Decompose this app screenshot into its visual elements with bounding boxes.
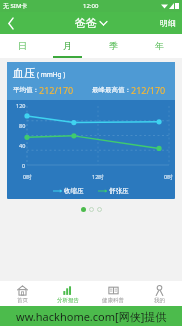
staticText: 无 SIM卡 (3, 2, 28, 10)
staticText: 明细 (160, 18, 176, 28)
staticText: 12时 (92, 173, 104, 181)
button[interactable]: 明细 (154, 12, 182, 34)
button[interactable]: 舒张压 (98, 187, 129, 195)
staticText: 平均值： (13, 86, 39, 94)
button[interactable]: 季 (90, 34, 136, 56)
staticText: ( mmHg ) (37, 70, 66, 79)
button[interactable]: 我的 (136, 281, 182, 306)
button[interactable]: Page (97, 207, 102, 212)
staticText: 212/170 (131, 84, 166, 96)
button[interactable]: Back (0, 12, 22, 34)
staticText: 爸爸 (75, 16, 97, 30)
staticText: 0时 (164, 173, 173, 181)
staticText: 血压 (13, 66, 35, 80)
button[interactable]: 年 (136, 34, 182, 56)
staticText: 120 (16, 102, 26, 109)
staticText: 40 (19, 142, 26, 149)
staticText: 收缩压 (64, 187, 84, 195)
button[interactable]: 分析报告 (45, 281, 90, 306)
staticText: 年 (155, 40, 164, 51)
button[interactable]: 爸爸 (75, 16, 107, 30)
button[interactable]: 首页 (0, 281, 45, 306)
button[interactable]: 日 (0, 34, 45, 56)
staticText: 日 (18, 40, 27, 51)
staticText: 首页 (17, 297, 28, 304)
staticText: 80 (19, 122, 26, 129)
button[interactable]: 健康科普 (90, 281, 136, 306)
button[interactable]: 月 (45, 34, 90, 56)
staticText: 健康科普 (102, 297, 124, 304)
staticText: 最峰最高值： (92, 86, 131, 94)
staticText: 分析报告 (57, 297, 79, 304)
button[interactable]: 收缩压 (53, 187, 84, 195)
staticText: ww.hackhome.com[网侠]提供 (16, 309, 167, 324)
staticText: 0 (22, 162, 26, 169)
staticText: 212/170 (39, 84, 74, 96)
staticText: 12:00 (83, 2, 99, 10)
button[interactable]: 血压 (7, 62, 175, 199)
staticText: 月 (63, 40, 72, 51)
button[interactable]: Page 1 (81, 207, 86, 212)
button[interactable]: Page (89, 207, 94, 212)
staticText: 0时 (23, 173, 32, 181)
staticText: 舒张压 (109, 187, 129, 195)
staticText: 我的 (154, 297, 165, 304)
staticText: 季 (109, 40, 118, 51)
